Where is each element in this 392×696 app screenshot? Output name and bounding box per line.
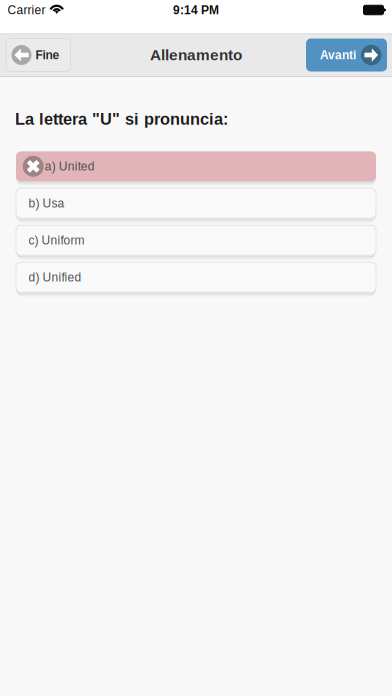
staticText: Allenamento [150, 46, 242, 63]
button[interactable]: d) Unified [16, 262, 376, 292]
staticText: Carrier [7, 3, 45, 17]
button[interactable]: Avanti [306, 38, 387, 71]
button[interactable]: b) Usa [16, 188, 376, 218]
button[interactable]: c) Uniform [16, 225, 376, 255]
staticText: Avanti [320, 48, 356, 62]
staticText: a) United [45, 160, 95, 173]
staticText: b) Usa [28, 197, 64, 210]
staticText: d) Unified [28, 271, 81, 284]
staticText: 9:14 PM [173, 3, 219, 17]
staticText: Fine [35, 48, 59, 62]
staticText: c) Uniform [28, 234, 84, 247]
button[interactable]: Fine [6, 38, 70, 71]
button[interactable]: a) United [16, 151, 376, 181]
staticText: La lettera "U" si pronuncia: [15, 110, 228, 128]
